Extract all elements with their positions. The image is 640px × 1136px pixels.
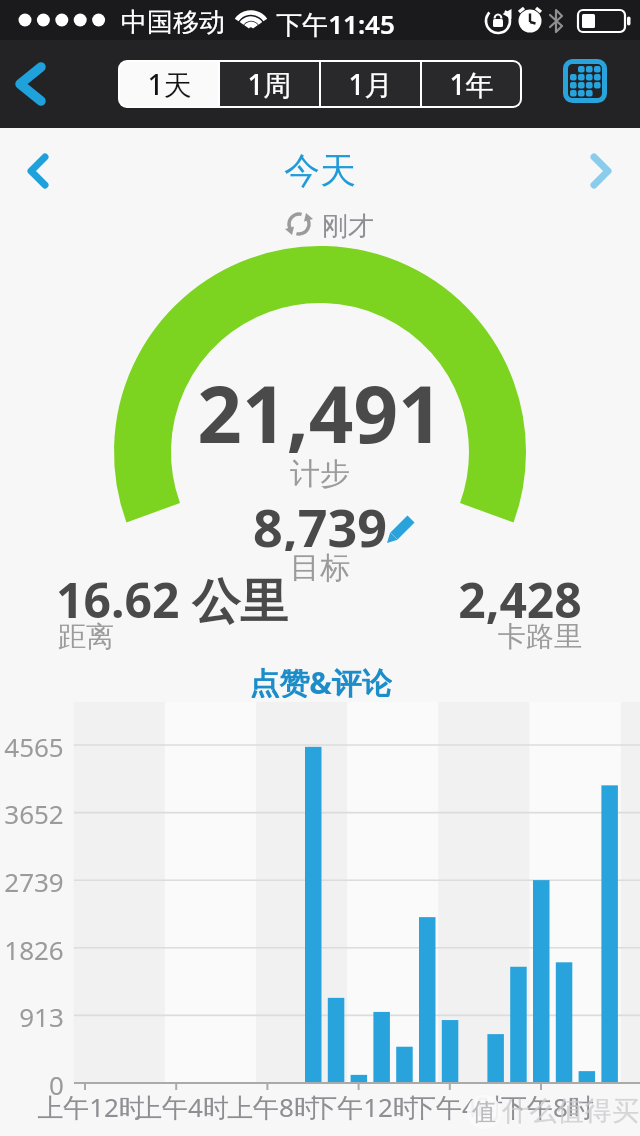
staticText: 距离 [58, 619, 114, 654]
button[interactable] [20, 146, 56, 196]
staticText: 1826 [4, 932, 64, 967]
staticText: 2739 [4, 864, 64, 899]
button[interactable]: 8,739 [253, 491, 387, 551]
button[interactable]: 1月 [321, 62, 420, 106]
button[interactable] [584, 146, 620, 196]
button[interactable]: 1年 [422, 62, 520, 106]
button[interactable]: 点赞&评论 [249, 662, 392, 698]
staticText: 0 [49, 1067, 64, 1102]
staticText: 21,491 [197, 360, 443, 460]
staticText: 1年 [449, 65, 494, 103]
staticText: 今天 [284, 148, 356, 192]
staticText: 1天 [147, 65, 192, 103]
staticText: 2,428 [458, 567, 582, 632]
staticText: 1月 [348, 65, 393, 103]
staticText: 值 [472, 1097, 496, 1127]
staticText: 目标 [290, 549, 350, 585]
staticText: 3652 [4, 796, 64, 831]
staticText: 8,739 [253, 491, 387, 551]
staticText: 上午12时 [37, 1089, 145, 1125]
staticText: 刚才 [322, 210, 374, 243]
staticText: 什么值得买 [502, 1094, 640, 1128]
staticText: 下午12时 [311, 1089, 419, 1125]
staticText: 下午8时 [501, 1089, 594, 1125]
staticText: 上午4时 [136, 1089, 229, 1125]
button[interactable]: 1周 [220, 62, 319, 106]
staticText: 4565 [4, 729, 64, 764]
button[interactable]: 今天 [284, 148, 356, 192]
staticText: 中国移动 [121, 6, 225, 39]
staticText: 计步 [290, 455, 350, 491]
button[interactable] [8, 58, 54, 110]
staticText: 上午8时 [227, 1089, 320, 1125]
staticText: 点赞&评论 [249, 662, 392, 698]
staticText: 1周 [247, 65, 292, 103]
staticText: 16.62 公里 [56, 567, 288, 633]
staticText: 卡路里 [498, 619, 582, 654]
staticText: 下午4时 [410, 1089, 503, 1125]
button[interactable] [563, 59, 607, 103]
staticText: 下午11:45 [276, 6, 395, 42]
button[interactable]: 1天 [120, 62, 218, 106]
staticText: 913 [19, 999, 64, 1034]
